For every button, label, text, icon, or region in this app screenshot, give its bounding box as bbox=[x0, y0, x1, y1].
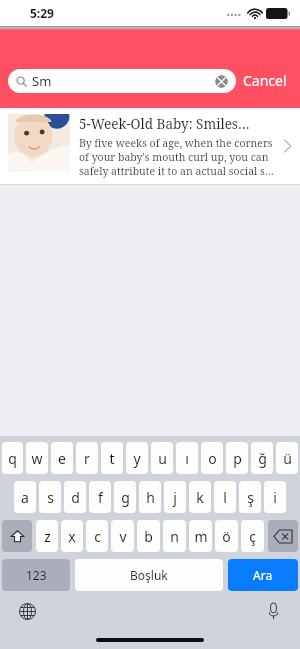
button[interactable]: u bbox=[151, 442, 173, 474]
button[interactable]: 123 bbox=[2, 559, 70, 591]
button[interactable]: p bbox=[226, 442, 248, 474]
button[interactable]: s bbox=[39, 481, 61, 513]
staticText: w bbox=[31, 449, 43, 468]
button[interactable]: k bbox=[189, 481, 211, 513]
button[interactable]: ı bbox=[176, 442, 198, 474]
button[interactable]: t bbox=[101, 442, 123, 474]
button[interactable]: Clear text bbox=[215, 75, 228, 88]
button[interactable]: Delete bbox=[268, 520, 298, 552]
staticText: ı bbox=[185, 449, 189, 468]
staticText: 123 bbox=[26, 567, 47, 583]
button[interactable]: Change keyboard language bbox=[16, 600, 38, 622]
button[interactable]: v bbox=[111, 520, 134, 552]
button[interactable]: Ara bbox=[228, 559, 298, 591]
staticText: 5-Week-Old Baby: Smiles… bbox=[79, 115, 250, 133]
staticText: ç bbox=[249, 527, 256, 546]
staticText: ğ bbox=[258, 449, 267, 468]
button[interactable]: ü bbox=[276, 442, 298, 474]
button[interactable]: c bbox=[86, 520, 108, 552]
staticText: z bbox=[44, 527, 51, 546]
button[interactable]: o bbox=[201, 442, 223, 474]
staticText: ü bbox=[283, 449, 292, 468]
staticText: 5:29 bbox=[30, 5, 54, 21]
staticText: l bbox=[223, 488, 227, 507]
staticText: s bbox=[47, 488, 54, 507]
button[interactable]: h bbox=[139, 481, 161, 513]
staticText: c bbox=[94, 527, 101, 546]
button[interactable]: w bbox=[26, 442, 48, 474]
staticText: ş bbox=[247, 488, 254, 507]
staticText: Ara bbox=[253, 567, 273, 583]
button[interactable]: g bbox=[114, 481, 136, 513]
button[interactable]: n bbox=[163, 520, 186, 552]
button[interactable]: j bbox=[164, 481, 186, 513]
staticText: k bbox=[196, 488, 204, 507]
button[interactable]: r bbox=[76, 442, 98, 474]
button[interactable]: ğ bbox=[251, 442, 273, 474]
staticText: p bbox=[233, 449, 242, 468]
button[interactable]: ö bbox=[215, 520, 238, 552]
staticText: r bbox=[84, 449, 90, 468]
button[interactable]: 5-Week-Old Baby: Smiles… bbox=[0, 108, 300, 184]
staticText: e bbox=[58, 449, 66, 468]
button[interactable]: Dictation bbox=[262, 600, 284, 622]
button[interactable]: q bbox=[2, 442, 23, 474]
button[interactable]: f bbox=[89, 481, 111, 513]
staticText: b bbox=[144, 527, 153, 546]
staticText: Sm bbox=[32, 72, 52, 90]
button[interactable]: Sm bbox=[8, 69, 236, 93]
button[interactable]: b bbox=[137, 520, 160, 552]
staticText: i bbox=[273, 488, 277, 507]
staticText: v bbox=[119, 527, 127, 546]
button[interactable]: ç bbox=[241, 520, 264, 552]
staticText: m bbox=[194, 527, 208, 546]
button[interactable]: x bbox=[61, 520, 83, 552]
button[interactable]: m bbox=[189, 520, 212, 552]
staticText: x bbox=[68, 527, 76, 546]
staticText: h bbox=[146, 488, 155, 507]
button[interactable]: d bbox=[64, 481, 86, 513]
staticText: u bbox=[158, 449, 167, 468]
staticText: y bbox=[133, 449, 141, 468]
button[interactable]: z bbox=[36, 520, 58, 552]
staticText: By five weeks of age, when the corners o… bbox=[79, 136, 279, 178]
button[interactable]: e bbox=[51, 442, 73, 474]
button[interactable]: Shift bbox=[2, 520, 32, 552]
staticText: n bbox=[170, 527, 179, 546]
staticText: g bbox=[121, 488, 130, 507]
staticText: d bbox=[71, 488, 80, 507]
staticText: q bbox=[8, 449, 17, 468]
button[interactable]: ş bbox=[239, 481, 261, 513]
staticText: Boşluk bbox=[130, 567, 168, 583]
staticText: t bbox=[109, 449, 115, 468]
button[interactable]: a bbox=[14, 481, 36, 513]
button[interactable]: y bbox=[126, 442, 148, 474]
button[interactable]: l bbox=[214, 481, 236, 513]
button[interactable]: i bbox=[264, 481, 286, 513]
staticText: a bbox=[21, 488, 29, 507]
button[interactable]: Cancel bbox=[236, 67, 294, 94]
button[interactable]: Boşluk bbox=[75, 559, 223, 591]
staticText: j bbox=[173, 488, 177, 507]
staticText: ö bbox=[222, 527, 231, 546]
staticText: Cancel bbox=[243, 71, 287, 90]
staticText: f bbox=[98, 488, 103, 507]
staticText: o bbox=[208, 449, 217, 468]
